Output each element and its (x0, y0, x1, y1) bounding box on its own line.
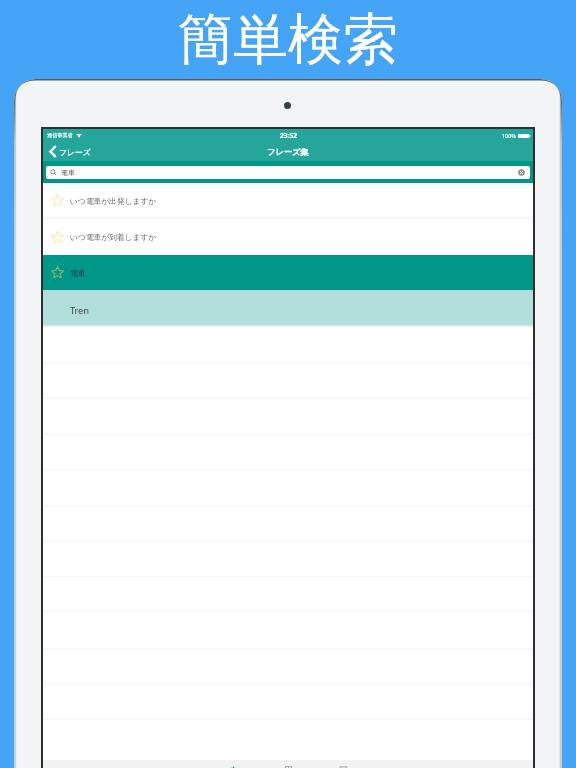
button[interactable]: いつ電車が到着しますか (43, 219, 533, 255)
button[interactable]: Phrases (277, 763, 300, 768)
staticText: フレーズ (59, 147, 91, 157)
staticText: フレーズ集 (267, 147, 309, 157)
button[interactable]: フレーズ (43, 144, 97, 159)
button[interactable]: Search field (46, 166, 530, 179)
staticText: 通信事業者 (47, 132, 73, 139)
staticText: いつ電車が到着しますか (70, 232, 157, 242)
staticText: 電車 (61, 168, 75, 177)
button[interactable]: Tren (43, 290, 533, 326)
staticText: 100% (502, 132, 516, 139)
button[interactable]: 電車 (43, 255, 533, 290)
staticText: 簡単検索 (178, 5, 398, 74)
staticText: 電車 (70, 268, 86, 278)
button[interactable]: いつ電車が出発しますか (43, 183, 533, 218)
button[interactable]: Favorites (222, 763, 245, 768)
staticText: 23:52 (280, 131, 297, 140)
button[interactable]: Settings (332, 763, 355, 768)
other: Clear text (518, 169, 525, 176)
staticText: いつ電車が出発しますか (70, 196, 157, 206)
staticText: Tren (70, 304, 89, 317)
